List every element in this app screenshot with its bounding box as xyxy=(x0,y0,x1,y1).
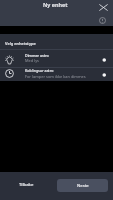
staticText: Koblingsur astro xyxy=(25,68,54,73)
button[interactable]: Info xyxy=(99,17,106,24)
button[interactable]: Neste xyxy=(57,179,108,192)
staticText: Velg enhetstype xyxy=(5,41,36,46)
staticText: Neste xyxy=(77,183,89,189)
button[interactable]: Koblingsur astro xyxy=(0,68,113,81)
staticText: Tilbake xyxy=(19,182,34,188)
staticText: Ny enhet xyxy=(43,1,68,8)
button[interactable]: Dimmer astro xyxy=(0,50,113,67)
button[interactable]: Velg Koblingsur astro xyxy=(98,69,110,81)
button[interactable]: Lukk xyxy=(99,3,108,12)
staticText: Med lys xyxy=(25,58,39,63)
button[interactable]: Velg Dimmer astro xyxy=(98,54,110,66)
button[interactable]: Tilbake xyxy=(14,178,39,191)
staticText: For lamper som ikke kan dimmes xyxy=(25,74,86,79)
staticText: Dimmer astro xyxy=(25,53,49,58)
